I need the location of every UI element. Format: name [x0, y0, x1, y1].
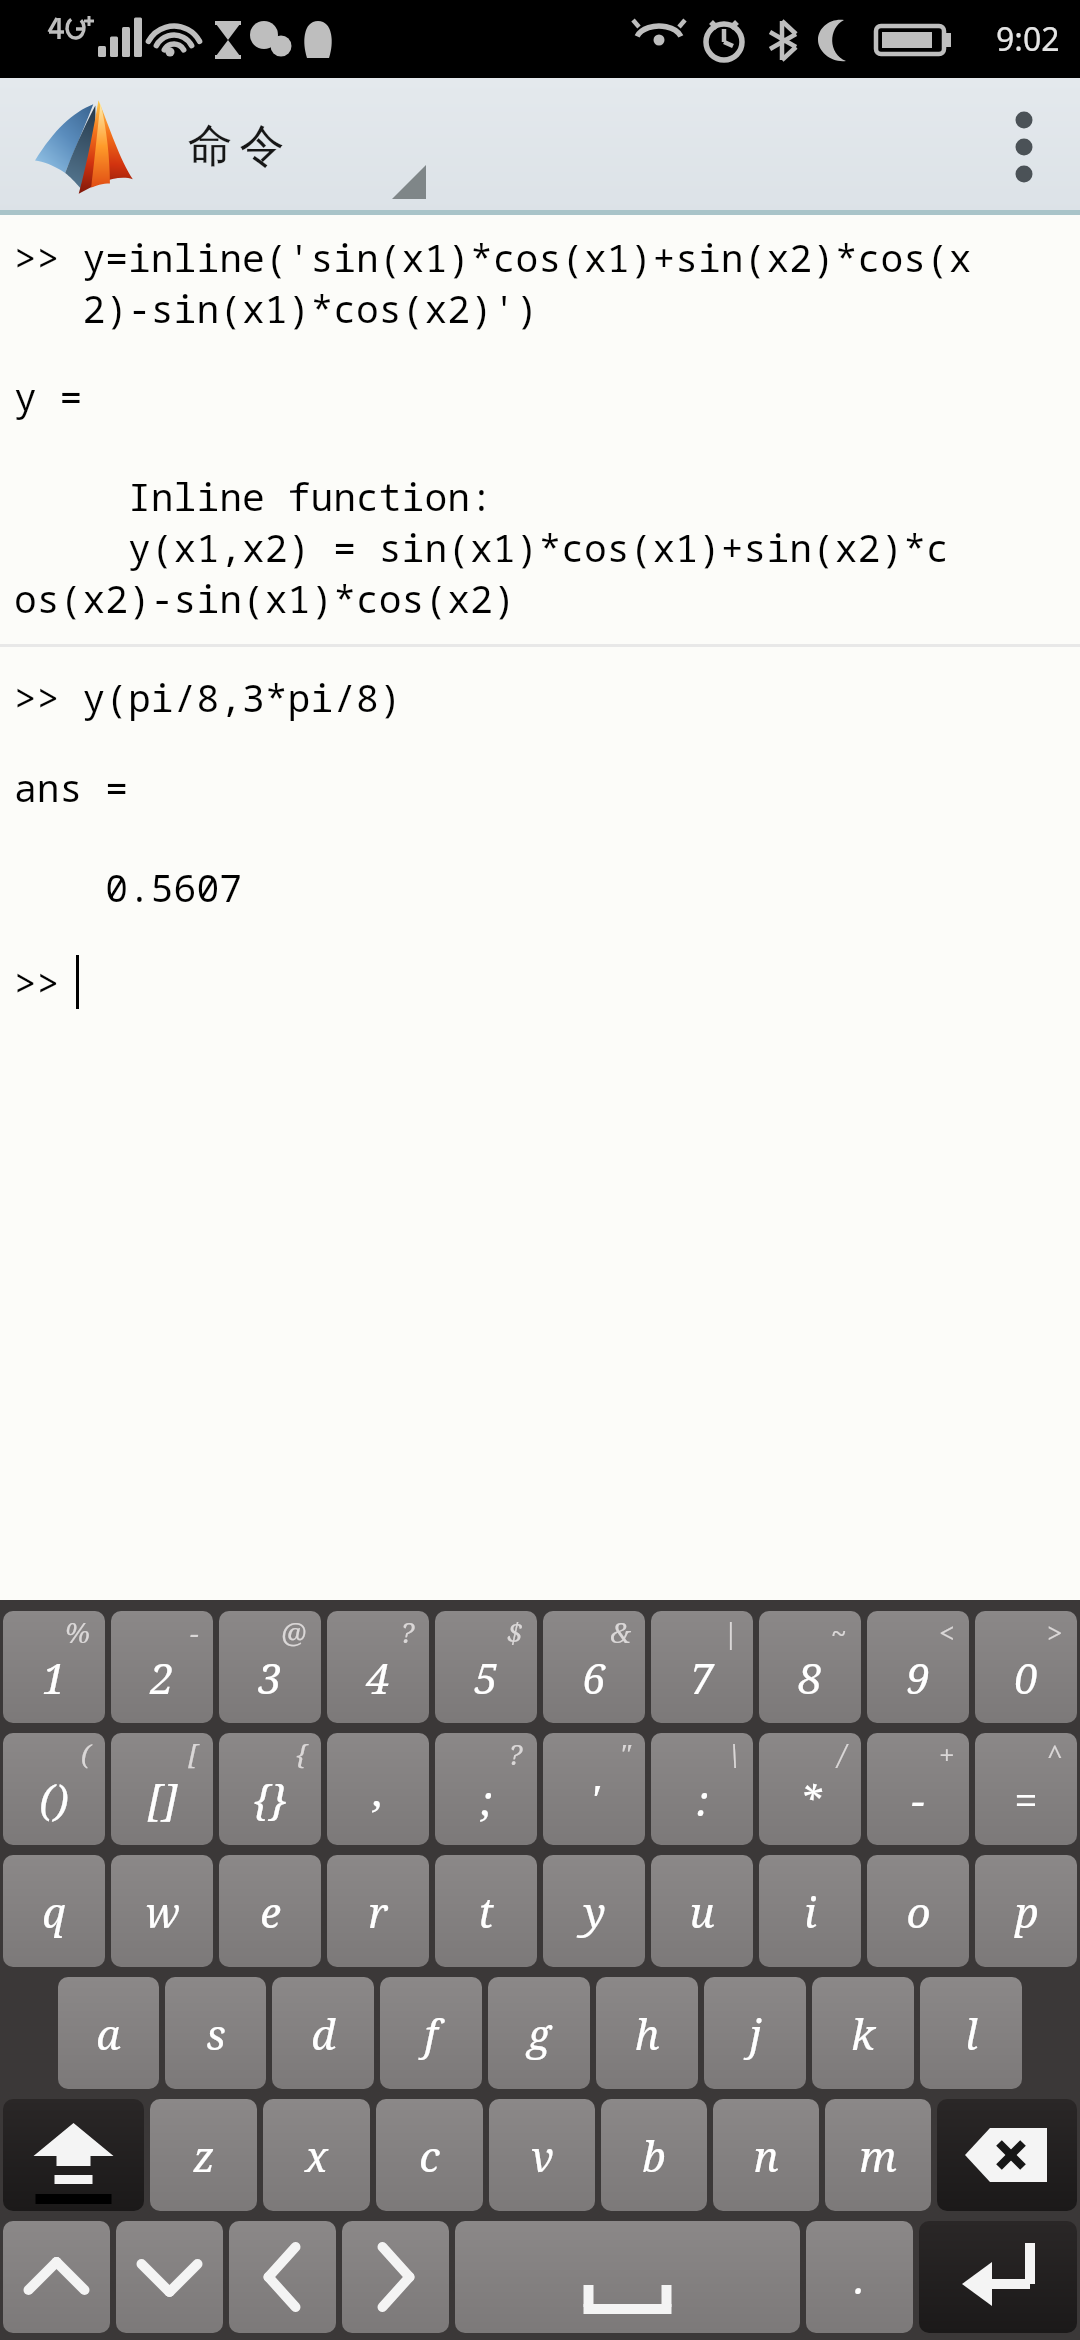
staticText: a [96, 2005, 121, 2062]
button[interactable]: i [759, 1855, 861, 1967]
button[interactable]: @ [219, 1611, 321, 1723]
staticText: j [749, 2005, 762, 2062]
staticText: { [295, 1735, 307, 1773]
button[interactable]: More options [968, 78, 1080, 215]
button[interactable]: y [543, 1855, 645, 1967]
button[interactable]: - [111, 1611, 213, 1723]
button[interactable]: f [380, 1977, 482, 2089]
staticText: 9:02 [996, 17, 1060, 61]
button[interactable]: p [975, 1855, 1077, 1967]
staticText: ~ [831, 1613, 847, 1651]
button[interactable]: % [3, 1611, 105, 1723]
button[interactable]: m [825, 2099, 931, 2211]
button[interactable]: ( [3, 1733, 105, 1845]
button[interactable]: e [219, 1855, 321, 1967]
button[interactable]: a [58, 1977, 159, 2089]
staticText: >> [14, 956, 60, 1008]
staticText: w [145, 1883, 180, 1940]
staticText: < [939, 1613, 955, 1651]
button[interactable]: Down [116, 2221, 223, 2333]
button[interactable]: Enter [919, 2221, 1077, 2333]
staticText: c [419, 2127, 440, 2184]
button[interactable]: & [543, 1611, 645, 1723]
staticText: 0.5607 [14, 861, 243, 913]
staticText: 5 [474, 1649, 498, 1706]
button[interactable]: [ [111, 1733, 213, 1845]
button[interactable]: u [651, 1855, 753, 1967]
staticText: >> y=inline('sin(x1)*cos(x1)+sin(x2)*cos… [14, 231, 972, 334]
staticText: >> y(pi/8,3*pi/8) [14, 671, 402, 723]
button[interactable]: { [219, 1733, 321, 1845]
button[interactable]: o [867, 1855, 969, 1967]
staticText: e [260, 1883, 281, 1940]
button[interactable]: v [489, 2099, 595, 2211]
staticText: x [305, 2127, 328, 2184]
staticText: + [939, 1735, 955, 1773]
staticText: ? [508, 1735, 523, 1773]
button[interactable]: w [111, 1855, 213, 1967]
staticText: ( [81, 1735, 91, 1773]
staticText: 9 [906, 1649, 930, 1706]
button[interactable]: c [376, 2099, 483, 2211]
button[interactable]: j [704, 1977, 806, 2089]
button[interactable]: h [596, 1977, 698, 2089]
staticText: & [610, 1613, 631, 1651]
staticText: z [193, 2127, 215, 2184]
staticText: q [42, 1883, 66, 1940]
staticText: 2 [150, 1649, 174, 1706]
button[interactable]: k [812, 1977, 914, 2089]
button[interactable]: >> y=inline('sin(x1)*cos(x1)+sin(x2)*cos… [0, 215, 1080, 1600]
staticText: @ [281, 1613, 307, 1651]
button[interactable]: g [488, 1977, 590, 2089]
button[interactable]: . [806, 2221, 913, 2333]
button[interactable]: s [165, 1977, 266, 2089]
button[interactable]: \ [651, 1733, 753, 1845]
button[interactable]: r [327, 1855, 429, 1967]
button[interactable]: / [759, 1733, 861, 1845]
staticText: " [619, 1735, 631, 1773]
button[interactable]: b [601, 2099, 707, 2211]
button[interactable]: > [975, 1611, 1077, 1723]
button[interactable]: d [272, 1977, 374, 2089]
staticText: n [753, 2127, 779, 2184]
staticText: % [65, 1613, 91, 1651]
staticText: f [424, 2005, 438, 2062]
staticText: {} [252, 1771, 288, 1828]
button[interactable]: t [435, 1855, 537, 1967]
staticText: o [906, 1883, 931, 1940]
button[interactable]: Right [342, 2221, 449, 2333]
staticText: ? [400, 1613, 415, 1651]
button[interactable]: Shift [3, 2099, 144, 2211]
staticText: , [373, 1761, 384, 1818]
button[interactable]: l [920, 1977, 1022, 2089]
button[interactable]: Backspace [937, 2099, 1077, 2211]
staticText: i [804, 1883, 817, 1940]
button[interactable]: Up [3, 2221, 110, 2333]
button[interactable]: q [3, 1855, 105, 1967]
button[interactable]: Space [455, 2221, 800, 2333]
staticText: 0 [1014, 1649, 1038, 1706]
staticText: m [859, 2127, 897, 2184]
button[interactable]: x [263, 2099, 370, 2211]
staticText: \ [730, 1735, 739, 1773]
button[interactable]: ~ [759, 1611, 861, 1723]
staticText: ; [480, 1771, 493, 1828]
button[interactable]: " [543, 1733, 645, 1845]
button[interactable]: | [651, 1611, 753, 1723]
button[interactable]: ? [435, 1733, 537, 1845]
button[interactable]: z [150, 2099, 257, 2211]
staticText: = [1014, 1771, 1038, 1828]
staticText: v [531, 2127, 554, 2184]
button[interactable]: ? [327, 1611, 429, 1723]
staticText: r [368, 1883, 388, 1940]
button[interactable]: + [867, 1733, 969, 1845]
staticText: ^ [1047, 1735, 1063, 1773]
staticText: h [634, 2005, 660, 2062]
button[interactable]: , [327, 1733, 429, 1845]
button[interactable]: Left [229, 2221, 336, 2333]
button[interactable]: n [713, 2099, 819, 2211]
button[interactable]: $ [435, 1611, 537, 1723]
button[interactable]: < [867, 1611, 969, 1723]
staticText: | [723, 1613, 739, 1651]
button[interactable]: ^ [975, 1733, 1077, 1845]
